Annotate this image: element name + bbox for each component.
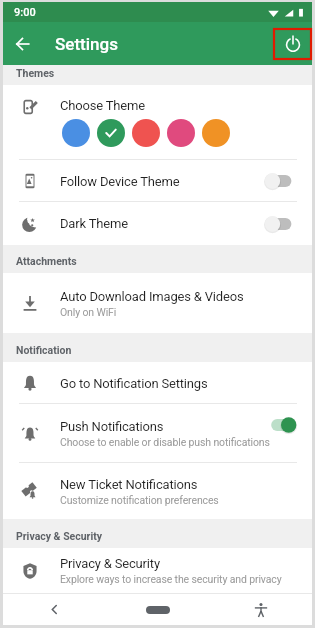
staticText: Dark Theme xyxy=(60,216,270,231)
button[interactable]: Home xyxy=(106,594,209,625)
button[interactable]: Privacy & Security xyxy=(3,548,312,593)
button[interactable]: Go to Notification Settings xyxy=(3,362,312,404)
button[interactable]: Choose Theme xyxy=(3,85,312,160)
button[interactable] xyxy=(202,119,230,147)
button[interactable]: Auto Download Images & Videos xyxy=(3,273,312,333)
staticText: Attachments xyxy=(16,255,77,267)
staticText: Auto Download Images & Videos xyxy=(60,289,244,304)
button[interactable]: Accessibility xyxy=(209,594,312,625)
staticText: Push Notifications xyxy=(60,419,164,434)
button[interactable]: Back xyxy=(10,31,36,57)
button[interactable] xyxy=(62,119,90,147)
staticText: Settings xyxy=(55,34,118,54)
staticText: New Ticket Notifications xyxy=(60,477,198,492)
staticText: Notification xyxy=(16,344,72,356)
button[interactable]: New Ticket Notifications xyxy=(3,463,312,519)
staticText: Choose to enable or disable push notific… xyxy=(60,436,270,448)
staticText: Choose Theme xyxy=(60,98,145,113)
button[interactable]: Dark Theme xyxy=(3,202,312,245)
staticText: Explore ways to increase the security an… xyxy=(60,573,282,585)
button[interactable]: Back xyxy=(3,594,106,625)
staticText: Follow Device Theme xyxy=(60,174,270,189)
button[interactable]: Follow Device Theme xyxy=(3,160,312,202)
button[interactable]: Push Notifications xyxy=(3,404,312,463)
staticText: Privacy & Security xyxy=(60,556,160,571)
button[interactable]: Power xyxy=(273,28,312,60)
button[interactable] xyxy=(97,119,125,147)
staticText: Privacy & Security xyxy=(16,530,103,542)
staticText: 9:00 xyxy=(14,6,36,19)
button[interactable] xyxy=(167,119,195,147)
button[interactable] xyxy=(132,119,160,147)
staticText: Only on WiFi xyxy=(60,306,117,318)
staticText: Themes xyxy=(16,67,55,79)
staticText: Customize notification preferences xyxy=(60,494,219,506)
staticText: Go to Notification Settings xyxy=(60,376,312,391)
